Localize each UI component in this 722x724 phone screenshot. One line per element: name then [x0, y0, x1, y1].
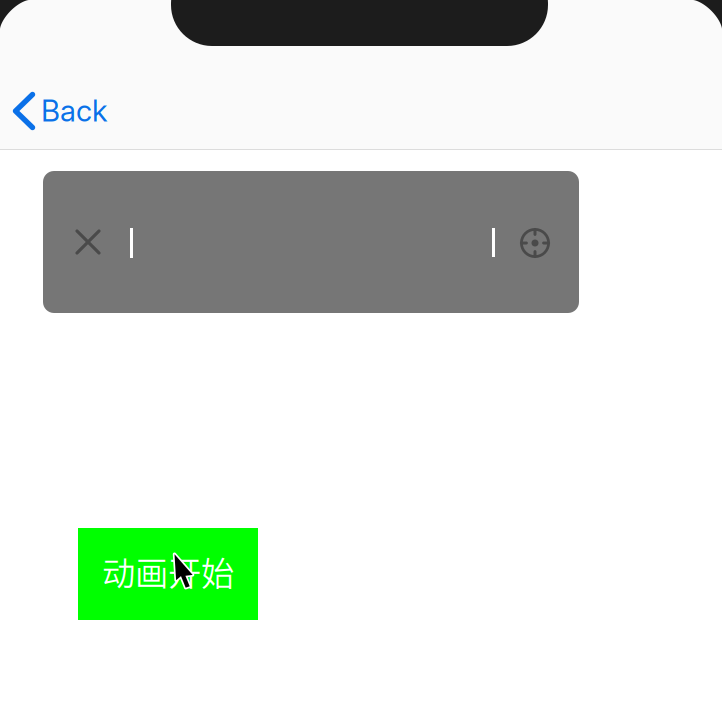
button[interactable]: Locate: [507, 215, 563, 271]
staticText: Back: [41, 93, 108, 128]
button[interactable]: 动画开始: [78, 528, 258, 620]
button[interactable]: Clear: [60, 214, 116, 270]
button[interactable]: Back: [0, 82, 124, 138]
staticText: 动画开始: [102, 547, 234, 595]
